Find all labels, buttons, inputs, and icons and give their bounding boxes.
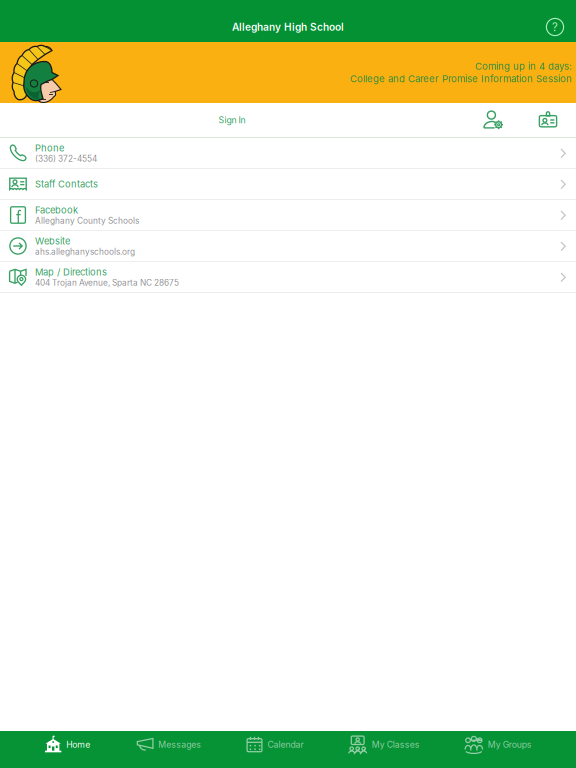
staticText: (336) 372-4554 [35,154,97,164]
staticText: Website [35,235,70,247]
staticText: ahs.alleghanyschools.org [35,247,135,257]
staticText: ? [552,20,558,34]
button[interactable]: Website [0,231,576,262]
staticText: Staff Contacts [35,178,98,190]
staticText: My Classes [372,739,420,750]
button[interactable]: Home [44,731,90,768]
staticText: Sign In [218,115,245,125]
staticText: Alleghany County Schools [35,216,139,226]
staticText: College and Career Promise Information S… [350,73,572,85]
staticText: Home [66,739,90,750]
button[interactable]: Coming up in 4 days: [0,42,576,103]
button[interactable]: Staff Contacts [0,169,576,200]
button[interactable]: Messages [134,731,201,768]
button[interactable]: Facebook [0,200,576,231]
staticText: Coming up in 4 days: [475,60,572,72]
staticText: Map / Directions [35,266,107,278]
staticText: 404 Trojan Avenue, Sparta NC 28675 [35,278,179,288]
button[interactable]: Calendar [245,731,303,768]
button[interactable]: Phone [0,138,576,169]
staticText: Phone [35,142,64,154]
staticText: Facebook [35,204,78,216]
button[interactable]: Sign In [197,103,267,137]
staticText: Calendar [267,739,303,750]
staticText: My Groups [488,739,532,750]
button[interactable]: My Groups [464,731,532,768]
button[interactable]: Map / Directions [0,262,576,293]
button[interactable]: My Classes [348,731,420,768]
button[interactable]: Student ID [532,106,564,134]
staticText: Alleghany High School [232,21,344,33]
button[interactable]: Account settings [478,106,510,134]
button[interactable]: Help [544,16,566,38]
staticText: Messages [158,739,201,750]
